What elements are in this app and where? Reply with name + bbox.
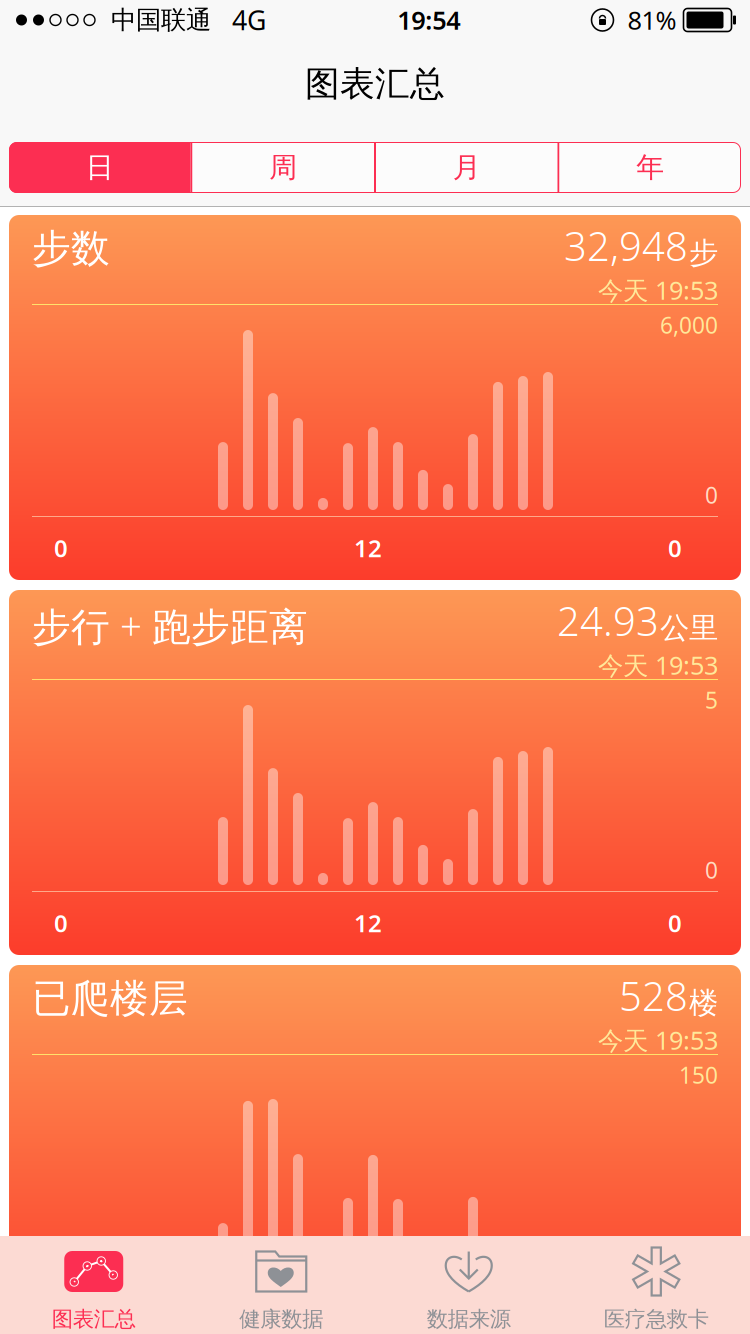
staticText: 0	[54, 532, 68, 564]
button[interactable]: 月	[376, 142, 557, 193]
staticText: 步行 + 跑步距离	[32, 600, 308, 651]
staticText: 公里	[660, 610, 718, 646]
button[interactable]: 年	[559, 142, 741, 193]
staticText: 19:54	[397, 3, 460, 37]
staticText: 0	[705, 1230, 718, 1260]
staticText: 0	[668, 532, 682, 564]
staticText: 0	[668, 1282, 682, 1314]
staticText: 今天 19:53	[598, 273, 718, 307]
staticText: 楼	[689, 985, 718, 1021]
staticText: 今天 19:53	[598, 648, 718, 682]
staticText: 步数	[32, 225, 110, 272]
staticText: 0	[668, 907, 682, 939]
staticText: 年	[636, 150, 664, 185]
button[interactable]: 医疗急救卡	[562, 1236, 750, 1334]
staticText: 0	[54, 907, 68, 939]
staticText: 4G	[211, 2, 266, 38]
staticText: 0	[705, 855, 718, 885]
staticText: 5	[705, 685, 718, 715]
staticText: 0	[705, 480, 718, 510]
staticText: 32,948	[564, 219, 688, 272]
staticText: 528	[619, 969, 688, 1022]
staticText: 中国联通	[95, 4, 211, 35]
staticText: 150	[679, 1060, 718, 1090]
button[interactable]: 周	[192, 142, 374, 193]
staticText: 月	[453, 150, 481, 185]
staticText: 图表汇总	[52, 1306, 136, 1332]
staticText: 数据来源	[427, 1306, 511, 1332]
staticText: 图表汇总	[305, 63, 445, 105]
button[interactable]: 健康数据	[187, 1236, 375, 1334]
staticText: 0	[54, 1282, 68, 1314]
staticText: 6,000	[660, 310, 718, 340]
staticText: 今天 19:53	[598, 1023, 718, 1057]
staticText: 12	[354, 907, 382, 939]
button[interactable]: 数据来源	[375, 1236, 562, 1334]
staticText: 步	[689, 235, 718, 271]
staticText: 24.93	[557, 594, 659, 647]
staticText: 日	[86, 150, 114, 185]
staticText: 已爬楼层	[32, 975, 188, 1022]
button[interactable]: 日	[9, 142, 190, 193]
button[interactable]: 图表汇总	[0, 1236, 187, 1334]
staticText: 健康数据	[239, 1306, 323, 1332]
staticText: 医疗急救卡	[604, 1306, 709, 1332]
staticText: 12	[354, 532, 382, 564]
staticText: 周	[269, 150, 297, 185]
staticText: 81%	[613, 3, 683, 37]
